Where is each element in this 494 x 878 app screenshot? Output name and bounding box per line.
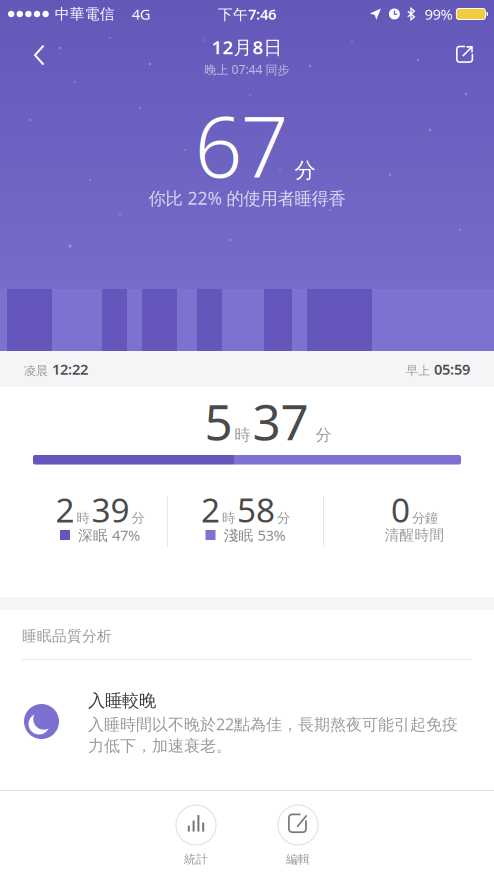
staticText: 0 [391, 487, 410, 532]
staticText: 5 [204, 388, 232, 454]
staticText: 清醒時間 [384, 526, 444, 544]
staticText: 58 [237, 487, 275, 532]
staticText: 37 [252, 388, 308, 454]
staticText: 凌晨 [24, 363, 48, 378]
staticText: 晚上 07:44 同步 [204, 61, 289, 77]
staticText: 睡眠品質分析 [22, 627, 112, 645]
staticText: 67 [194, 89, 288, 201]
staticText: 中華電信 [55, 5, 115, 23]
staticText: 12月8日 [211, 35, 282, 59]
button[interactable]: Back [0, 33, 46, 66]
staticText: 時 [234, 425, 250, 445]
staticText: 分 [277, 510, 290, 526]
staticText: 12:22 [52, 359, 88, 379]
staticText: 99% [424, 4, 452, 24]
staticText: 4G [132, 4, 151, 24]
staticText: 分 [315, 425, 331, 445]
staticText: 39 [91, 487, 129, 532]
staticText: 下午7:46 [218, 4, 276, 24]
staticText: 分鐘 [412, 510, 438, 526]
staticText: 淺眠 53% [223, 525, 285, 545]
button[interactable]: Share [456, 33, 494, 63]
button[interactable]: 編輯 [278, 805, 318, 867]
staticText: 2 [55, 487, 74, 532]
button[interactable]: 統計 [176, 805, 216, 867]
staticText: 早上 [406, 363, 430, 378]
staticText: 你比 22% 的使用者睡得香 [148, 186, 345, 209]
staticText: 入睡時間以不晚於22點為佳，長期熬夜可能引起免疫力低下，加速衰老。 [88, 713, 458, 756]
staticText: 時 [222, 510, 235, 526]
staticText: 深眠 47% [78, 525, 140, 545]
staticText: 分 [131, 510, 144, 526]
staticText: 時 [76, 510, 89, 526]
staticText: 05:59 [434, 359, 470, 379]
staticText: 分 [294, 157, 315, 184]
staticText: 統計 [184, 852, 208, 867]
staticText: 入睡較晚 [88, 690, 156, 711]
staticText: 2 [201, 487, 220, 532]
staticText: 編輯 [286, 852, 310, 867]
